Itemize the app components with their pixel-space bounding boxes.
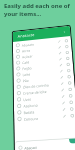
button[interactable]: Edit [59,57,62,61]
button[interactable]: Cenoura [14,111,75,123]
button[interactable]: Delete [70,114,74,117]
button[interactable]: Edit [62,101,65,105]
staticText: Feijão [22,65,33,70]
button[interactable]: Delete [68,88,72,91]
button[interactable]: Delete [65,45,68,48]
button[interactable]: Delete [66,63,70,66]
button[interactable]: Feijão [13,60,73,72]
button[interactable]: Creme de leite [14,85,75,97]
button[interactable]: Edit [63,114,66,118]
button[interactable]: Edit [58,51,62,55]
button[interactable]: Uvas [14,92,75,103]
button[interactable]: Edit [58,40,61,43]
staticText: Leite [22,71,31,76]
staticText: Pão [23,78,29,82]
button[interactable]: Óleo de cozinha [14,79,75,90]
staticText: Batata [23,109,35,114]
button[interactable]: Delete [65,39,68,42]
staticText: Azeitona [23,102,38,108]
button[interactable]: Abacate [13,37,71,49]
button[interactable]: Delete [69,94,72,98]
staticText: Abacaxi [24,145,38,149]
button[interactable]: Delete [68,81,71,85]
button[interactable]: Delete [67,69,70,72]
button[interactable]: Add item [69,138,75,144]
button[interactable]: Pão [13,73,74,84]
button[interactable]: Café [13,54,73,66]
button[interactable]: Batata [14,105,75,116]
button[interactable]: Edit [61,95,65,98]
staticText: Abacate [22,42,35,47]
button[interactable]: Edit [60,76,63,79]
staticText: Café [22,60,29,64]
button[interactable]: Delete [69,101,73,104]
staticText: Arroz [22,48,31,52]
button[interactable]: Anotaste [13,26,71,42]
staticText: Açúcar [22,53,33,58]
staticText: your items... [4,10,42,18]
button[interactable]: Delete [66,57,69,60]
button[interactable]: Leite [13,66,74,78]
button[interactable]: Edit [58,46,61,49]
button[interactable]: Delete [70,107,73,111]
staticText: Cenoura [24,115,39,121]
button[interactable]: Edit [62,108,66,111]
button[interactable]: Edit [59,63,62,67]
button[interactable]: Edit [60,82,64,85]
button[interactable]: Azeitona [14,98,75,109]
staticText: Creme de leite [23,89,47,95]
staticText: Anotaste [17,32,35,39]
staticText: Uvas [23,96,32,101]
button[interactable]: More options [62,30,66,34]
button[interactable]: Delete [67,75,71,78]
button[interactable]: Edit [61,88,64,92]
staticText: Óleo de cozinha [23,82,49,89]
staticText: Easily add each one of [4,2,70,10]
button[interactable]: Açúcar [13,49,72,60]
button[interactable]: Edit [60,69,63,73]
button[interactable]: Delete [66,51,69,54]
button[interactable]: Arroz [13,43,72,54]
